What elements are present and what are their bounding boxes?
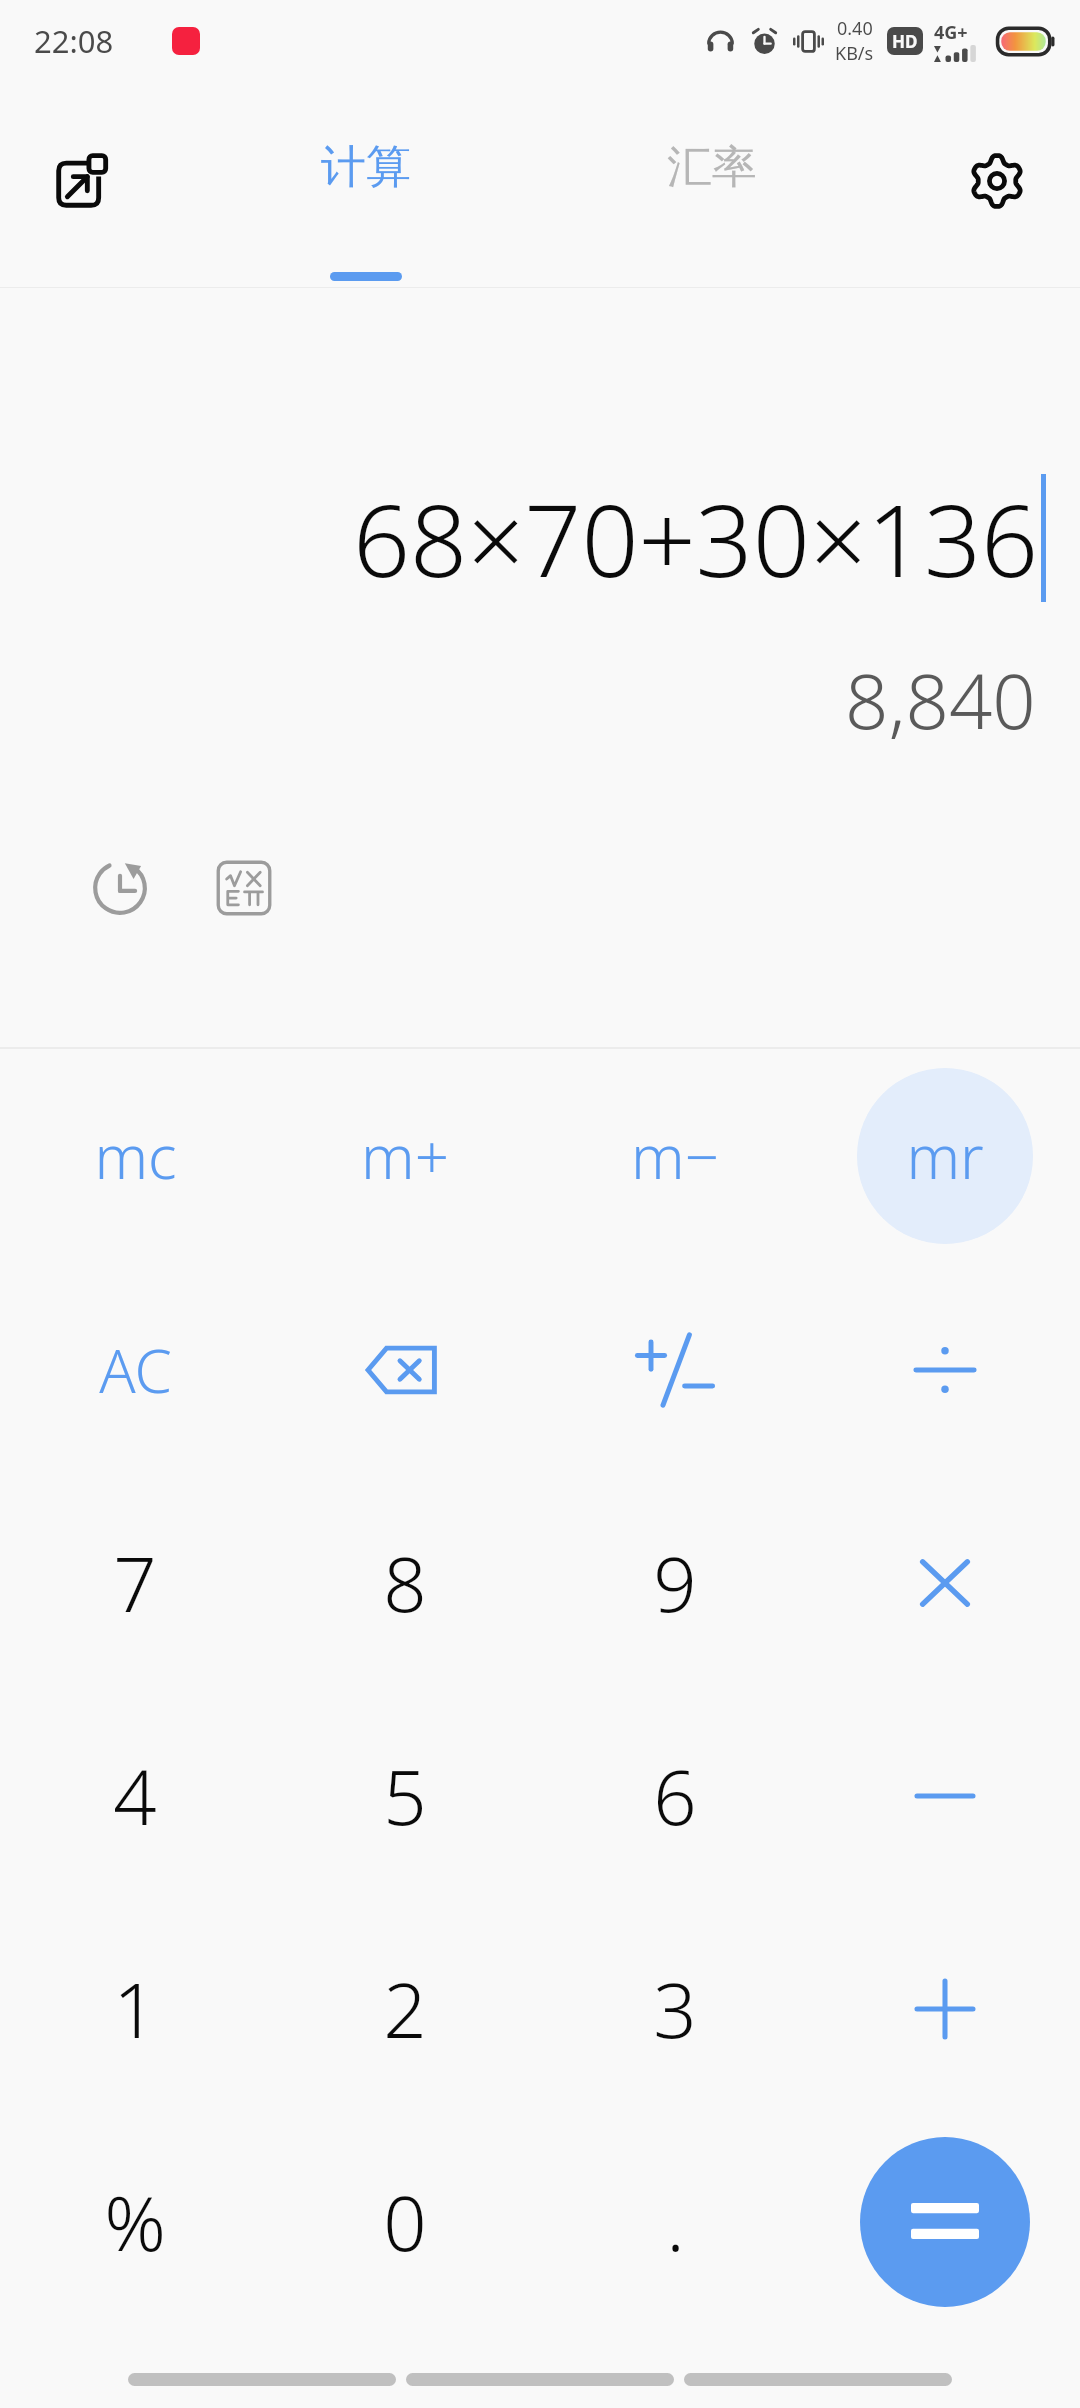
staticText: KB/s [835,41,874,66]
button[interactable]: 2 [270,1902,540,2115]
other: Equals [860,2137,1030,2307]
button[interactable]: mr [810,1049,1080,1263]
button[interactable]: 4 [0,1689,270,1902]
staticText: 8,840 [845,648,1036,752]
button[interactable]: . [540,2115,810,2328]
other: Minus [885,1736,1005,1856]
staticText: 5 [383,1744,427,1848]
staticText: 22:08 [34,20,114,62]
staticText: 6 [653,1744,697,1848]
other: Backspace [345,1310,465,1430]
button[interactable]: 0 [270,2115,540,2328]
staticText: 68×70+30×136 [353,470,1039,606]
staticText: 7 [113,1531,157,1635]
button[interactable]: Minus [810,1689,1080,1902]
staticText: 0 [383,2170,427,2274]
button[interactable]: History [80,848,160,928]
button[interactable]: 3 [540,1902,810,2115]
staticText: AC [99,1329,172,1411]
staticText: mc [94,1115,177,1197]
staticText: HD [892,30,918,53]
staticText: 0.40 [837,16,873,41]
staticText: mr [906,1115,984,1197]
button[interactable]: Plus [810,1902,1080,2115]
button[interactable]: Scientific [204,848,284,928]
staticText: 9 [653,1531,697,1635]
other: Multiply [885,1523,1005,1643]
staticText: 8 [383,1531,427,1635]
staticText: m+ [361,1115,449,1197]
button[interactable]: Divide [810,1263,1080,1476]
button[interactable]: 汇率 [588,82,836,280]
other: Divide [885,1310,1005,1430]
button[interactable]: Floating window [42,140,124,222]
button[interactable]: 8 [270,1476,540,1689]
button[interactable]: % [0,2115,270,2328]
other: Plus minus [615,1310,735,1430]
other: Plus [885,1949,1005,2069]
button[interactable]: mc [0,1049,270,1263]
staticText: 计算 [321,139,411,196]
staticText: 3 [653,1957,697,2061]
button[interactable]: Plus minus [540,1263,810,1476]
staticText: 4 [113,1744,157,1848]
button[interactable]: Multiply [810,1476,1080,1689]
staticText: . [666,2170,685,2274]
button[interactable]: 7 [0,1476,270,1689]
staticText: % [104,2170,166,2274]
button[interactable]: m+ [270,1049,540,1263]
button[interactable]: Settings [956,140,1038,222]
button[interactable]: Backspace [270,1263,540,1476]
button[interactable]: 5 [270,1689,540,1902]
button[interactable]: 6 [540,1689,810,1902]
button[interactable]: m− [540,1049,810,1263]
staticText: 汇率 [667,139,757,196]
staticText: 4G+ [934,20,968,45]
button[interactable]: 9 [540,1476,810,1689]
staticText: 1 [113,1957,157,2061]
staticText: 2 [383,1957,427,2061]
button[interactable]: 计算 [242,82,490,280]
button[interactable]: 1 [0,1902,270,2115]
button[interactable]: AC [0,1263,270,1476]
button[interactable]: Equals [810,2115,1080,2328]
staticText: m− [631,1115,719,1197]
